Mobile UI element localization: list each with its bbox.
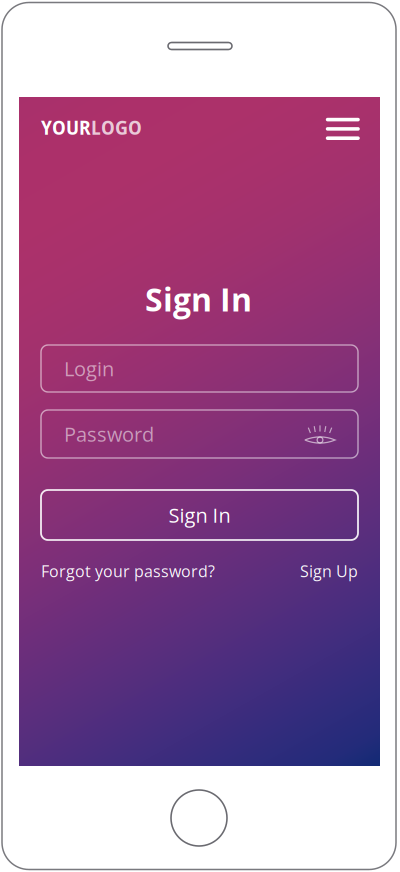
button[interactable]: Login <box>41 345 358 392</box>
button[interactable]: Open menu <box>317 107 369 151</box>
button[interactable]: Password <box>41 410 358 458</box>
staticText: Password <box>64 420 154 448</box>
button[interactable]: Forgot your password? <box>41 560 215 582</box>
staticText: Sign Up <box>300 560 358 582</box>
button[interactable]: Sign In <box>41 490 358 540</box>
staticText: Sign In <box>168 501 230 529</box>
staticText: Forgot your password? <box>41 560 215 582</box>
button[interactable]: Sign Up <box>300 560 358 582</box>
staticText: LOGO <box>91 113 142 141</box>
staticText: YOUR <box>41 113 91 141</box>
staticText: Login <box>64 355 114 382</box>
staticText: Sign In <box>145 277 252 321</box>
